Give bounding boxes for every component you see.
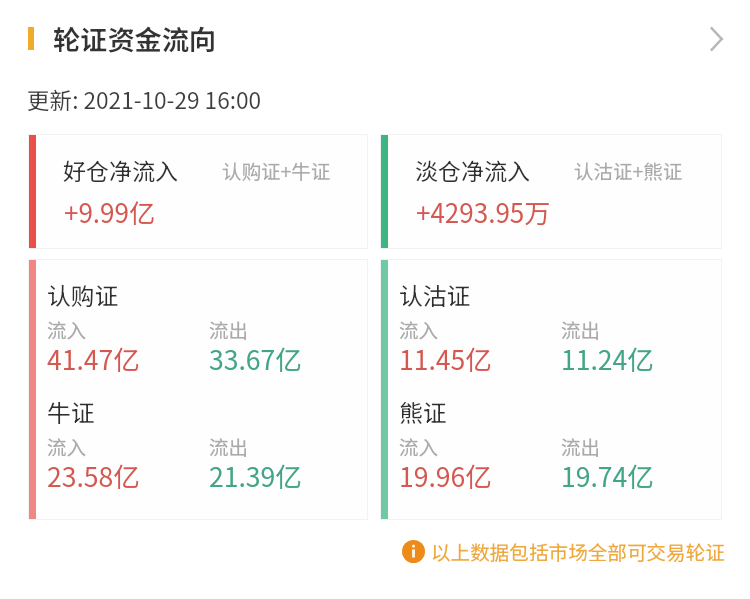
- staticText: 以上数据包括市场全部可交易轮证: [431, 537, 725, 565]
- staticText: 认沽证: [399, 277, 471, 311]
- staticText: 更新: 2021-10-29 16:00: [27, 83, 262, 116]
- staticText: 流入: [399, 315, 439, 343]
- staticText: +4293.95万: [416, 193, 551, 231]
- staticText: 认购证+牛证: [222, 156, 331, 184]
- staticText: 19.96亿: [399, 456, 492, 494]
- staticText: 认沽证+熊证: [574, 156, 683, 184]
- staticText: 23.58亿: [47, 456, 140, 494]
- staticText: 33.67亿: [209, 339, 302, 377]
- staticText: 流出: [561, 432, 601, 460]
- staticText: 流出: [209, 432, 249, 460]
- staticText: 流出: [561, 315, 601, 343]
- staticText: 熊证: [399, 394, 447, 428]
- button[interactable]: 好仓净流入: [28, 134, 368, 249]
- staticText: 19.74亿: [561, 456, 654, 494]
- staticText: 淡仓净流入: [415, 153, 530, 186]
- button[interactable]: 认沽证: [380, 259, 722, 520]
- staticText: 21.39亿: [209, 456, 302, 494]
- staticText: 好仓净流入: [63, 153, 178, 186]
- staticText: 流入: [47, 315, 87, 343]
- staticText: 流出: [209, 315, 249, 343]
- staticText: 11.24亿: [561, 339, 654, 377]
- staticText: 流入: [47, 432, 87, 460]
- staticText: 11.45亿: [399, 339, 492, 377]
- staticText: 认购证: [47, 277, 119, 311]
- staticText: 牛证: [47, 394, 95, 428]
- staticText: 轮证资金流向: [53, 18, 217, 57]
- button[interactable]: More: [691, 16, 737, 62]
- staticText: 41.47亿: [47, 339, 140, 377]
- button[interactable]: 轮证资金流向: [0, 0, 750, 76]
- button[interactable]: 认购证: [28, 259, 368, 520]
- button[interactable]: 淡仓净流入: [380, 134, 722, 249]
- button[interactable]: 以上数据包括市场全部可交易轮证: [402, 537, 725, 565]
- staticText: +9.99亿: [64, 193, 155, 231]
- staticText: 流入: [399, 432, 439, 460]
